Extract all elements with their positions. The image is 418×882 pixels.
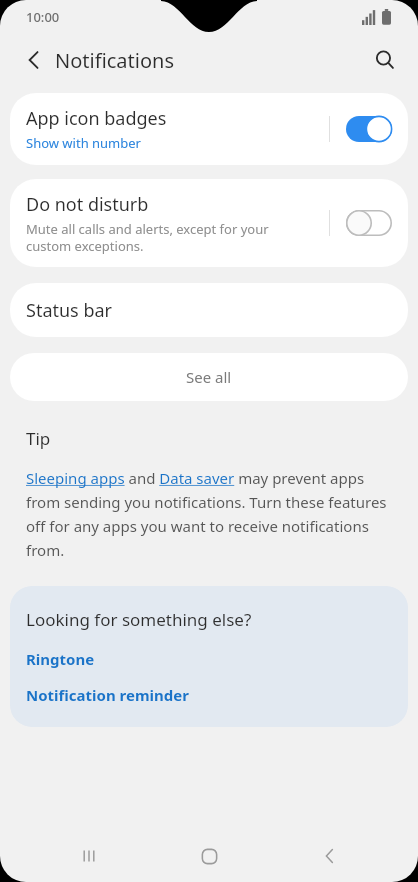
staticText: Looking for something else? <box>26 608 252 631</box>
staticText: App icon badges <box>26 106 167 131</box>
button[interactable]: Back <box>298 830 362 882</box>
button[interactable]: Notification reminder <box>26 685 189 705</box>
staticText: Show with number <box>26 134 141 152</box>
button[interactable]: App icon badges on <box>344 114 394 144</box>
button[interactable]: Search <box>362 37 408 83</box>
button[interactable]: Do not disturb <box>10 179 408 267</box>
staticText: See all <box>186 367 232 387</box>
button[interactable]: Back <box>12 38 56 82</box>
staticText: Tip <box>26 427 51 450</box>
button[interactable]: App icon badges <box>10 93 408 165</box>
button[interactable]: Ringtone <box>26 649 95 669</box>
staticText: Status bar <box>26 298 113 323</box>
staticText: Mute all calls and alerts, except for yo… <box>26 220 269 255</box>
button[interactable]: Home <box>177 830 241 882</box>
staticText: Do not disturb <box>26 192 149 217</box>
button[interactable]: See all <box>10 353 408 401</box>
button[interactable]: Status bar <box>10 283 408 337</box>
staticText: Notification reminder <box>26 685 189 705</box>
button[interactable]: Recents <box>57 830 121 882</box>
staticText: Ringtone <box>26 649 95 669</box>
staticText: 10:00 <box>26 8 60 26</box>
staticText: Notifications <box>55 47 174 74</box>
button[interactable]: Do not disturb off <box>344 208 394 238</box>
staticText: Sleeping apps and Data saver may prevent… <box>26 468 392 560</box>
